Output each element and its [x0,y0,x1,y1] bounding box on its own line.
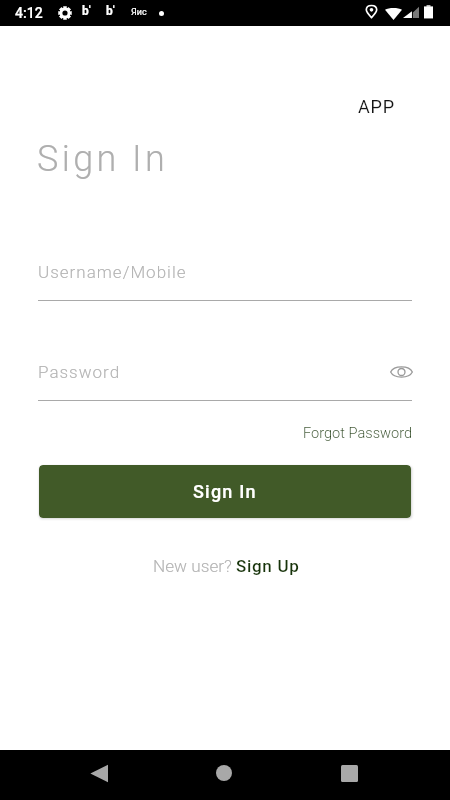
button[interactable]: Home [200,748,248,798]
staticText: Яиc [131,7,147,18]
staticText: New user? [153,556,232,576]
button[interactable]: Back [75,748,123,798]
staticText: bˈ [106,4,115,18]
staticText: Sign In [37,138,169,180]
button[interactable]: Recents [325,748,373,798]
staticText: APP [358,96,395,117]
button[interactable]: APP [358,96,395,117]
staticText: Password [38,362,121,382]
staticText: Forgot Password [303,424,413,441]
staticText: Username/Mobile [38,262,187,282]
button[interactable]: Sign Up [236,556,300,576]
button[interactable]: Forgot Password [303,424,413,441]
staticText: Sign In [193,481,257,502]
button[interactable]: Show password [378,352,424,392]
staticText: 4:12 [15,5,43,21]
staticText: bˈ [82,4,91,18]
button[interactable]: Sign In [39,465,411,518]
